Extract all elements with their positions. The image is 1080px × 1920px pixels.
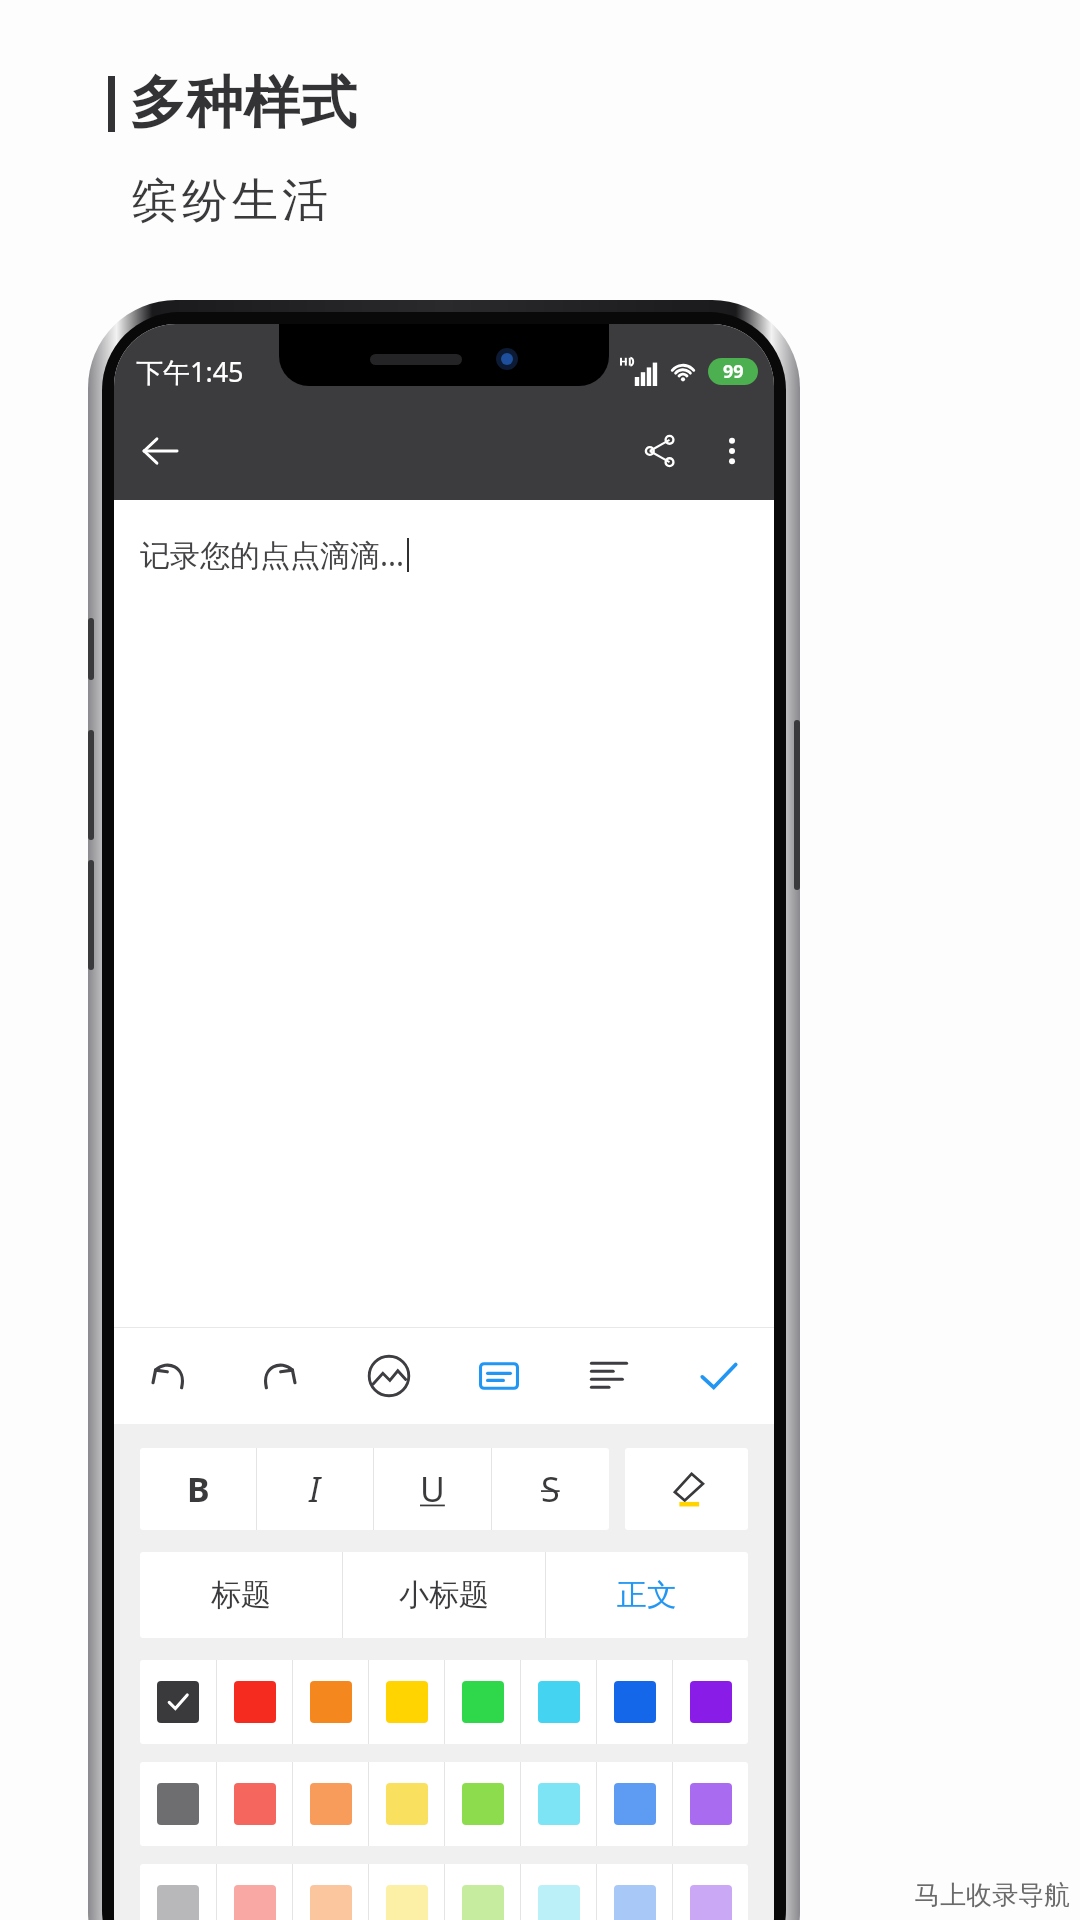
button[interactable]: Checklist xyxy=(444,1328,554,1424)
button[interactable]: Insert image xyxy=(334,1328,444,1424)
button[interactable]: Share xyxy=(624,415,696,487)
button[interactable]: Color 3 xyxy=(369,1660,444,1744)
staticText: 小标题 xyxy=(399,1576,489,1614)
button[interactable]: Color 6 xyxy=(597,1660,672,1744)
button[interactable]: Color 5 xyxy=(521,1660,596,1744)
button[interactable]: Color 4 xyxy=(445,1864,520,1920)
button[interactable]: Color 4 xyxy=(445,1762,520,1846)
staticText: 正文 xyxy=(617,1576,677,1614)
button[interactable]: Color 3 xyxy=(369,1864,444,1920)
button[interactable]: Color 2 xyxy=(293,1864,368,1920)
button[interactable]: Color 2 xyxy=(293,1660,368,1744)
button[interactable]: Color 7 xyxy=(673,1660,748,1744)
button[interactable]: Color 1 xyxy=(217,1864,292,1920)
staticText: 99 xyxy=(723,359,744,384)
button[interactable]: Color 3 xyxy=(369,1762,444,1846)
staticText: 缤纷生活 xyxy=(130,172,330,230)
button[interactable]: Color 1 xyxy=(217,1762,292,1846)
button[interactable]: Highlighter xyxy=(625,1448,748,1530)
button[interactable]: 正文 xyxy=(546,1552,748,1638)
staticText: 多种样式 xyxy=(129,68,357,139)
staticText: 下午1:45 xyxy=(136,353,244,390)
staticText: 标题 xyxy=(211,1576,271,1614)
button[interactable]: 小标题 xyxy=(343,1552,545,1638)
button[interactable]: Redo xyxy=(224,1328,334,1424)
staticText: 记录您的点点滴滴... xyxy=(140,534,405,575)
button[interactable]: Back xyxy=(124,415,196,487)
button[interactable]: Color 0 xyxy=(140,1762,216,1846)
staticText: I xyxy=(309,1466,321,1512)
button[interactable]: Color 7 xyxy=(673,1864,748,1920)
button[interactable]: Color 1 xyxy=(217,1660,292,1744)
button[interactable]: I xyxy=(257,1448,373,1530)
staticText: U xyxy=(420,1466,445,1512)
button[interactable]: Color 6 xyxy=(597,1864,672,1920)
staticText: 马上收录导航 xyxy=(914,1879,1070,1912)
button[interactable]: Color 4 xyxy=(445,1660,520,1744)
button[interactable]: Color 0 xyxy=(140,1660,216,1744)
button[interactable]: S xyxy=(492,1448,609,1530)
button[interactable]: Color 2 xyxy=(293,1762,368,1846)
button[interactable]: 标题 xyxy=(140,1552,342,1638)
button[interactable]: Undo xyxy=(114,1328,224,1424)
button[interactable]: Color 5 xyxy=(521,1762,596,1846)
button[interactable]: B xyxy=(140,1448,256,1530)
button[interactable]: Color 7 xyxy=(673,1762,748,1846)
button[interactable]: Align xyxy=(554,1328,664,1424)
staticText: B xyxy=(187,1466,210,1512)
button[interactable]: Done xyxy=(664,1328,774,1424)
button[interactable]: More options xyxy=(696,415,768,487)
button[interactable]: Color 5 xyxy=(521,1864,596,1920)
button[interactable]: Color 0 xyxy=(140,1864,216,1920)
button[interactable]: Color 6 xyxy=(597,1762,672,1846)
staticText: S xyxy=(541,1466,560,1512)
button[interactable]: U xyxy=(374,1448,491,1530)
